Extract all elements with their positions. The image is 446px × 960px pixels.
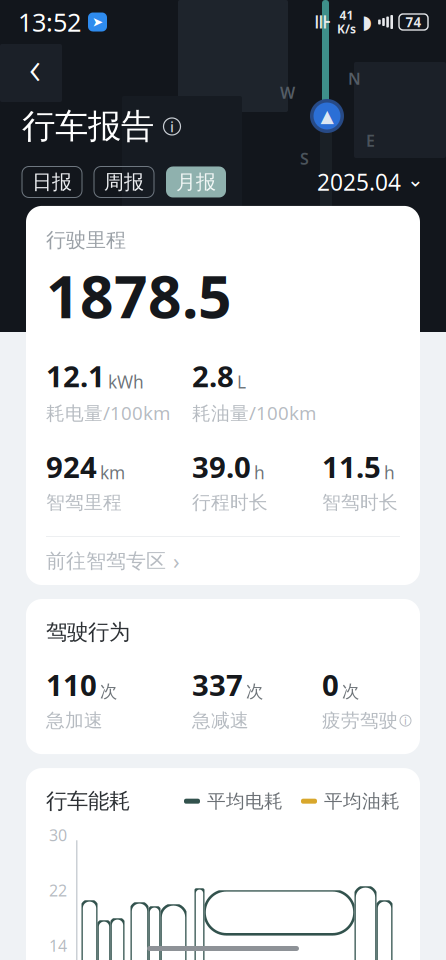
staticText: 14 (49, 935, 67, 956)
staticText: 次 (246, 681, 263, 702)
staticText: 11.5 (322, 447, 381, 486)
staticText: 39.0 (192, 447, 251, 486)
button[interactable]: 日报 (22, 166, 82, 197)
staticText: 41 (340, 7, 354, 23)
staticText: L (237, 370, 246, 393)
staticText: 22 (49, 880, 67, 901)
staticText: 周报 (104, 170, 144, 194)
staticText: ⌄ (407, 168, 424, 191)
staticText: 13:52 (18, 5, 81, 39)
staticText: 月报 (176, 170, 216, 194)
staticText: ◗ (362, 11, 372, 33)
staticText: 行程时长 (192, 491, 268, 514)
staticText: 耗电量/100km (46, 400, 170, 425)
staticText: 急减速 (192, 709, 249, 732)
staticText: 急加速 (46, 709, 103, 732)
staticText: ▲ (320, 106, 333, 126)
button[interactable]: 周报 (94, 166, 154, 197)
staticText: 924 (46, 447, 97, 486)
staticText: 337 (192, 665, 243, 704)
button[interactable]: Info about driving report (161, 115, 183, 137)
staticText: W (280, 82, 295, 103)
staticText: h (384, 461, 395, 484)
staticText: 2025.04 (317, 167, 401, 197)
staticText: ‹ (29, 37, 41, 97)
staticText: 次 (100, 681, 117, 702)
staticText: N (348, 68, 361, 89)
button[interactable]: 月报 (166, 166, 226, 197)
staticText: 疲劳驾驶 (322, 709, 398, 732)
button[interactable]: Back (12, 44, 58, 90)
staticText: 行车能耗 (46, 788, 130, 814)
staticText: 0 (322, 665, 339, 704)
staticText: 日报 (32, 170, 72, 194)
button[interactable]: 前往智驾专区 (46, 537, 400, 585)
staticText: 次 (342, 681, 359, 702)
staticText: km (100, 461, 125, 484)
staticText: i (170, 117, 174, 136)
staticText: 110 (46, 665, 97, 704)
staticText: 行驶里程 (46, 228, 126, 252)
staticText: 30 (49, 824, 67, 846)
staticText: 平均电耗 (207, 790, 283, 813)
staticText: 12.1 (46, 356, 105, 395)
staticText: 智驾里程 (46, 491, 122, 514)
staticText: i (404, 713, 407, 728)
staticText: ➤ (92, 14, 103, 29)
staticText: E (366, 130, 375, 151)
staticText: 耗油量/100km (192, 400, 316, 425)
staticText: 行车报告 (22, 106, 154, 147)
staticText: 2.8 (192, 356, 234, 395)
staticText: S (300, 148, 309, 169)
staticText: › (173, 547, 180, 575)
staticText: 74 (405, 13, 421, 31)
staticText: 前往智驾专区 (46, 549, 166, 573)
staticText: kWh (108, 370, 144, 393)
button[interactable]: 2025.04 (317, 161, 424, 203)
staticText: 平均油耗 (324, 790, 400, 813)
staticText: 1878.5 (46, 256, 232, 334)
staticText: 智驾时长 (322, 491, 398, 514)
staticText: K/s (337, 21, 356, 37)
staticText: 驾驶行为 (46, 619, 130, 645)
staticText: h (254, 461, 265, 484)
staticText: ⊪ (314, 11, 331, 33)
